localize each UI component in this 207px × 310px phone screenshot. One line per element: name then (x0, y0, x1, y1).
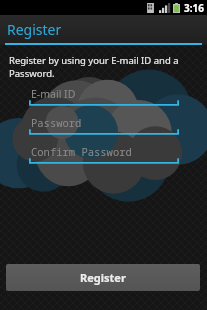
staticText: Confirm Password (31, 145, 132, 159)
staticText: Register (7, 20, 62, 39)
staticText: 3:16 (184, 1, 204, 15)
button[interactable]: E-mail ID (29, 86, 179, 106)
staticText: Password (31, 116, 82, 130)
staticText: E-mail ID (31, 87, 76, 101)
staticText: Register by using your E-mail ID and a P… (9, 54, 179, 80)
button[interactable]: Register (6, 264, 200, 291)
button[interactable]: Password (29, 115, 179, 135)
button[interactable]: Confirm Password (29, 144, 179, 164)
staticText: Register (80, 270, 126, 285)
